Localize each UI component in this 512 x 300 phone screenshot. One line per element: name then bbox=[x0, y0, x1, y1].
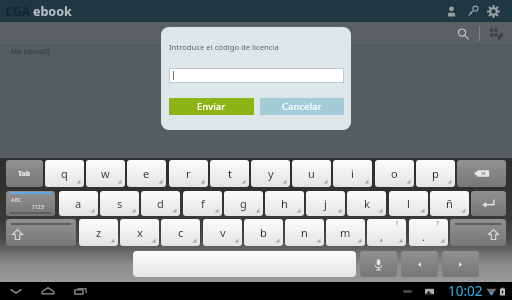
button[interactable]: m bbox=[326, 219, 365, 246]
staticText: CGA bbox=[5, 3, 31, 20]
staticText: ? bbox=[436, 219, 440, 229]
button[interactable]: Account bbox=[441, 0, 462, 22]
button[interactable]: z bbox=[79, 219, 118, 246]
staticText: c bbox=[178, 225, 184, 240]
staticText: 10:02 bbox=[448, 282, 483, 300]
button[interactable]: v bbox=[203, 219, 242, 246]
button[interactable]: n bbox=[285, 219, 324, 246]
staticText: x bbox=[137, 225, 143, 240]
button[interactable]: Move left bbox=[401, 251, 438, 277]
staticText: . bbox=[422, 229, 425, 244]
button[interactable]: Home bbox=[37, 282, 59, 300]
staticText: Introduce el código de licencia bbox=[169, 42, 279, 52]
staticText: Cancelar bbox=[282, 100, 322, 113]
staticText: Tab bbox=[18, 169, 31, 179]
button[interactable]: Search bbox=[452, 22, 474, 45]
staticText: ñ bbox=[446, 196, 453, 211]
button[interactable]: Hide keyboard bbox=[5, 282, 27, 300]
staticText: , bbox=[380, 229, 383, 244]
staticText: i bbox=[351, 166, 354, 181]
button[interactable]: j bbox=[306, 191, 345, 216]
button[interactable]: Shift bbox=[6, 219, 76, 246]
button[interactable]: Enter bbox=[471, 191, 506, 216]
staticText: z bbox=[96, 225, 102, 240]
staticText: Mis Libros(0) bbox=[11, 47, 50, 56]
staticText: l bbox=[407, 196, 410, 211]
button[interactable]: Tab bbox=[6, 160, 43, 187]
button[interactable]: s bbox=[100, 191, 139, 216]
staticText: y bbox=[268, 166, 274, 181]
button[interactable]: Recent apps bbox=[70, 282, 92, 300]
staticText: u bbox=[308, 166, 315, 181]
staticText: h bbox=[281, 196, 288, 211]
staticText: m bbox=[340, 225, 351, 240]
button[interactable]: Space bbox=[133, 251, 356, 277]
button[interactable]: Enviar bbox=[169, 98, 254, 115]
button[interactable]: c bbox=[161, 219, 200, 246]
staticText: ! bbox=[396, 219, 398, 229]
staticText: b bbox=[260, 225, 267, 240]
button[interactable]: u bbox=[292, 160, 331, 187]
button[interactable]: t bbox=[210, 160, 249, 187]
button[interactable]: i bbox=[333, 160, 372, 187]
button[interactable]: x bbox=[120, 219, 159, 246]
button[interactable]: License key bbox=[462, 0, 483, 22]
staticText: w bbox=[101, 166, 110, 181]
button[interactable]: y bbox=[251, 160, 290, 187]
staticText: e bbox=[143, 166, 150, 181]
button[interactable]: a bbox=[59, 191, 98, 216]
button[interactable] bbox=[169, 68, 344, 83]
staticText: a bbox=[75, 196, 82, 211]
button[interactable]: Cancelar bbox=[260, 98, 344, 115]
staticText: f bbox=[201, 196, 205, 211]
staticText: j bbox=[324, 196, 327, 211]
button[interactable]: Move right bbox=[442, 251, 479, 277]
staticText: n bbox=[301, 225, 308, 240]
button[interactable]: w bbox=[86, 160, 125, 187]
staticText: ?123 bbox=[32, 203, 44, 210]
staticText: ebook bbox=[33, 3, 72, 20]
staticText: s bbox=[117, 196, 123, 211]
staticText: ABC bbox=[11, 196, 22, 203]
staticText: o bbox=[391, 166, 398, 181]
button[interactable]: Edit list bbox=[486, 22, 506, 45]
staticText: Enviar bbox=[197, 100, 226, 113]
button[interactable]: f bbox=[183, 191, 222, 216]
button[interactable]: Voice input bbox=[360, 251, 397, 277]
button[interactable]: Shift bbox=[450, 219, 506, 246]
button[interactable]: r bbox=[169, 160, 208, 187]
button[interactable]: Backspace bbox=[457, 160, 506, 187]
button[interactable]: d bbox=[141, 191, 180, 216]
button[interactable]: , bbox=[367, 219, 406, 246]
staticText: v bbox=[220, 225, 226, 240]
button[interactable]: . bbox=[409, 219, 448, 246]
button[interactable]: k bbox=[347, 191, 386, 216]
button[interactable]: q bbox=[45, 160, 84, 187]
staticText: p bbox=[432, 166, 439, 181]
staticText: k bbox=[364, 196, 370, 211]
staticText: q bbox=[61, 166, 68, 181]
staticText: g bbox=[240, 196, 247, 211]
button[interactable]: h bbox=[265, 191, 304, 216]
button[interactable]: g bbox=[224, 191, 263, 216]
button[interactable]: e bbox=[127, 160, 166, 187]
staticText: r bbox=[186, 166, 191, 181]
button[interactable]: l bbox=[389, 191, 428, 216]
button[interactable]: Symbols bbox=[6, 191, 55, 216]
button[interactable]: ñ bbox=[430, 191, 469, 216]
button[interactable]: p bbox=[416, 160, 455, 187]
button[interactable]: o bbox=[375, 160, 414, 187]
button[interactable]: b bbox=[244, 219, 283, 246]
staticText: t bbox=[228, 166, 232, 181]
staticText: d bbox=[157, 196, 164, 211]
button[interactable]: Settings bbox=[483, 0, 503, 22]
